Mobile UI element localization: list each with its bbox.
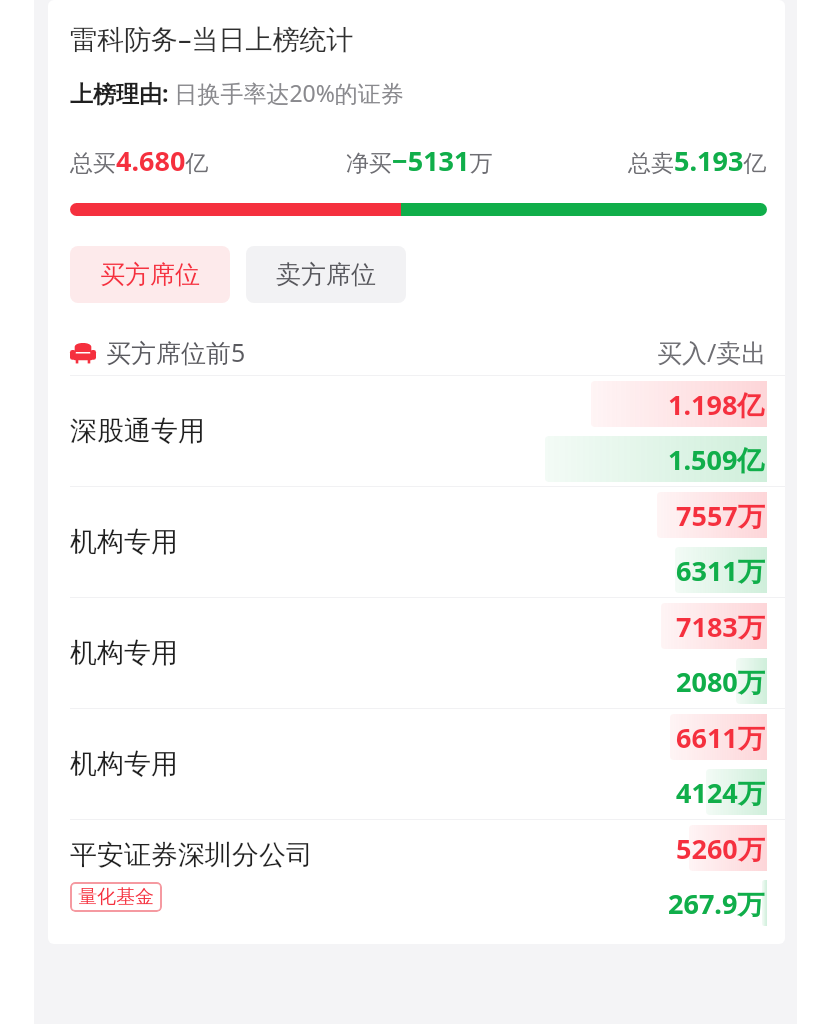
other: Seat	[70, 339, 96, 365]
staticText: 机构专用	[70, 747, 178, 781]
staticText: 6311万	[676, 552, 765, 589]
staticText: 卖方席位	[276, 259, 376, 290]
staticText: 机构专用	[70, 525, 178, 559]
staticText: 总卖5.193亿	[628, 142, 767, 179]
staticText: 量化基金	[78, 885, 154, 909]
staticText: 净买−5131万	[346, 142, 493, 179]
staticText: 5260万	[676, 830, 765, 867]
staticText: 总买4.680亿	[70, 142, 209, 179]
staticText: 买方席位前5	[106, 335, 246, 369]
staticText: 7183万	[676, 608, 765, 645]
staticText: 买方席位	[100, 259, 200, 290]
button[interactable]: 平安证券深圳分公司	[48, 819, 785, 944]
button[interactable]: 机构专用	[48, 486, 785, 597]
button[interactable]: 机构专用	[48, 597, 785, 708]
staticText: 机构专用	[70, 636, 178, 670]
button[interactable]: 买方席位	[70, 246, 230, 303]
button[interactable]: 卖方席位	[246, 246, 406, 303]
button[interactable]: 机构专用	[48, 708, 785, 819]
staticText: 雷科防务–当日上榜统计	[70, 20, 354, 57]
staticText: 深股通专用	[70, 414, 205, 448]
staticText: 1.509亿	[668, 441, 765, 478]
staticText: 6611万	[676, 719, 765, 756]
staticText: 上榜理由: 日换手率达20%的证券	[70, 77, 404, 108]
staticText: 买入/卖出	[657, 335, 767, 369]
staticText: 1.198亿	[668, 386, 765, 423]
staticText: 267.9万	[668, 885, 765, 922]
staticText: 2080万	[676, 663, 765, 700]
staticText: 平安证券深圳分公司	[70, 838, 313, 872]
button[interactable]: 深股通专用	[48, 375, 785, 486]
staticText: 4124万	[676, 774, 765, 811]
staticText: 7557万	[676, 497, 765, 534]
